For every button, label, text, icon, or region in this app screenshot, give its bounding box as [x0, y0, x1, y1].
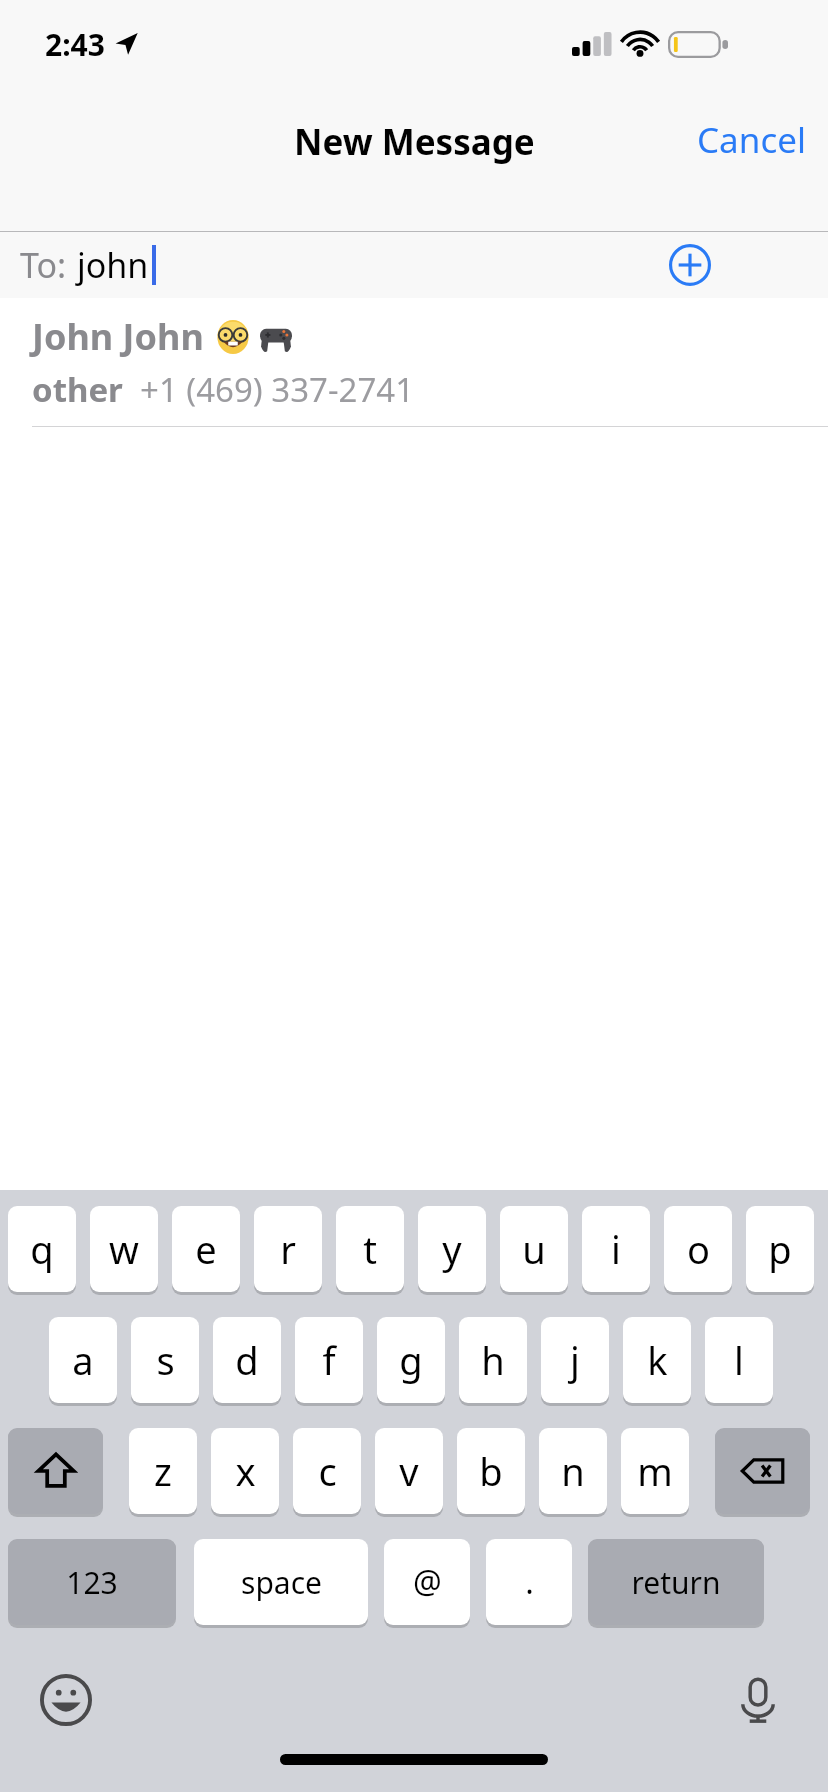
button[interactable]: t	[336, 1205, 404, 1293]
staticText: @	[413, 1560, 442, 1604]
button[interactable]: r	[254, 1205, 322, 1293]
staticText: i	[611, 1223, 621, 1275]
button[interactable]: q	[8, 1205, 76, 1293]
button[interactable]: l	[705, 1316, 773, 1404]
staticText: John John	[32, 312, 204, 361]
button[interactable]: j	[541, 1316, 609, 1404]
staticText: q	[30, 1223, 54, 1275]
button[interactable]: y	[418, 1205, 486, 1293]
staticText: d	[235, 1334, 259, 1386]
button[interactable]: Dictation	[720, 1662, 796, 1738]
staticText: other +1 (469) 337-2741	[32, 367, 415, 412]
button[interactable]: m	[621, 1427, 689, 1515]
staticText: space	[241, 1562, 322, 1603]
button[interactable]: h	[459, 1316, 527, 1404]
button[interactable]: v	[375, 1427, 443, 1515]
staticText: t	[363, 1223, 377, 1275]
button[interactable]: Backspace	[715, 1427, 810, 1515]
button[interactable]: w	[90, 1205, 158, 1293]
staticText: f	[322, 1334, 336, 1386]
staticText: e	[195, 1223, 217, 1275]
button[interactable]: k	[623, 1316, 691, 1404]
button[interactable]: To:	[0, 232, 828, 298]
button[interactable]: n	[539, 1427, 607, 1515]
button[interactable]: Shift	[8, 1427, 103, 1515]
staticText: w	[109, 1223, 139, 1275]
staticText: m	[637, 1445, 673, 1497]
staticText: 123	[66, 1562, 118, 1603]
button[interactable]: b	[457, 1427, 525, 1515]
staticText: x	[235, 1445, 256, 1497]
staticText: b	[479, 1445, 503, 1497]
staticText: return	[631, 1562, 721, 1603]
button[interactable]: Emoji	[28, 1662, 104, 1738]
button[interactable]: Cancel	[675, 100, 828, 180]
staticText: k	[647, 1334, 668, 1386]
button[interactable]: f	[295, 1316, 363, 1404]
button[interactable]: Return	[588, 1538, 764, 1626]
button[interactable]: c	[293, 1427, 361, 1515]
staticText: h	[481, 1334, 505, 1386]
staticText: u	[522, 1223, 546, 1275]
staticText: l	[734, 1334, 744, 1386]
button[interactable]: a	[49, 1316, 117, 1404]
button[interactable]: p	[746, 1205, 814, 1293]
button[interactable]: x	[211, 1427, 279, 1515]
button[interactable]: e	[172, 1205, 240, 1293]
staticText: s	[156, 1334, 175, 1386]
staticText: New Message	[294, 118, 535, 166]
staticText: a	[72, 1334, 94, 1386]
staticText: r	[280, 1223, 296, 1275]
button[interactable]: Period	[486, 1538, 572, 1626]
staticText: j	[570, 1334, 580, 1386]
staticText: g	[399, 1334, 423, 1386]
button[interactable]: z	[129, 1427, 197, 1515]
button[interactable]: s	[131, 1316, 199, 1404]
staticText: .	[525, 1560, 534, 1604]
button[interactable]: John John	[0, 298, 828, 426]
staticText: v	[399, 1445, 419, 1497]
button[interactable]: i	[582, 1205, 650, 1293]
staticText: Cancel	[697, 116, 806, 164]
button[interactable]: Numbers	[8, 1538, 176, 1626]
staticText: To:	[20, 242, 67, 288]
staticText: john	[77, 242, 149, 288]
button[interactable]: d	[213, 1316, 281, 1404]
staticText: o	[687, 1223, 710, 1275]
staticText: n	[561, 1445, 585, 1497]
staticText: z	[154, 1445, 172, 1497]
staticText: c	[318, 1445, 337, 1497]
button[interactable]: At sign	[384, 1538, 470, 1626]
button[interactable]: u	[500, 1205, 568, 1293]
staticText: 2:43	[45, 24, 105, 65]
button[interactable]: g	[377, 1316, 445, 1404]
button[interactable]: o	[664, 1205, 732, 1293]
staticText: y	[442, 1223, 462, 1275]
button[interactable]: Space	[194, 1538, 368, 1626]
staticText: p	[768, 1223, 792, 1275]
button[interactable]: Add contact	[664, 239, 716, 291]
